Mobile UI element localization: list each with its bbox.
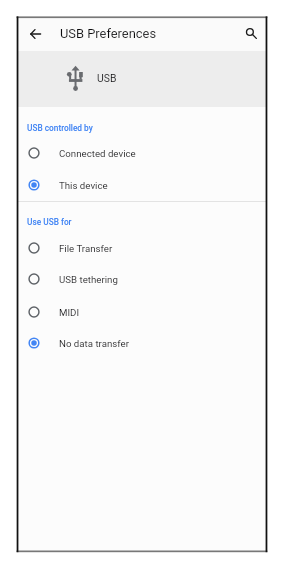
button[interactable]: Back bbox=[19, 17, 52, 50]
staticText: No data transfer bbox=[59, 338, 129, 349]
staticText: USB Preferences bbox=[60, 26, 157, 41]
button[interactable]: USB tethering bbox=[17, 263, 266, 295]
staticText: USB tethering bbox=[59, 274, 118, 285]
staticText: USB controlled by bbox=[27, 123, 93, 133]
button[interactable]: MIDI bbox=[17, 296, 266, 328]
button[interactable]: No data transfer bbox=[17, 327, 266, 359]
staticText: USB bbox=[97, 72, 117, 84]
staticText: Use USB for bbox=[27, 217, 72, 227]
staticText: MIDI bbox=[59, 307, 80, 318]
button[interactable]: USB bbox=[17, 51, 266, 107]
staticText: Connected device bbox=[59, 148, 136, 159]
button[interactable]: Connected device bbox=[17, 137, 266, 169]
button[interactable]: File Transfer bbox=[17, 232, 266, 264]
button[interactable]: Search bbox=[235, 17, 268, 50]
button[interactable]: This device bbox=[17, 169, 266, 201]
staticText: File Transfer bbox=[59, 243, 113, 254]
staticText: This device bbox=[59, 180, 108, 191]
